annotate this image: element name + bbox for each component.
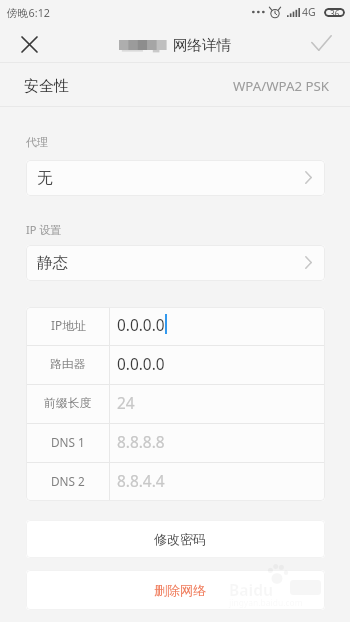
staticText: DNS 2 bbox=[51, 473, 85, 489]
staticText: IP 设置 bbox=[26, 222, 62, 237]
staticText: 代理 bbox=[26, 135, 48, 149]
button[interactable]: DNS 2 bbox=[26, 463, 325, 501]
button[interactable]: 删除网络 bbox=[26, 570, 325, 610]
staticText: 路由器 bbox=[50, 357, 86, 372]
staticText: 前缀长度 bbox=[44, 396, 92, 411]
staticText: 0.0.0.0 bbox=[117, 315, 165, 336]
staticText: 0.0.0.0 bbox=[117, 354, 165, 375]
staticText: 安全性 bbox=[24, 77, 69, 96]
button[interactable]: 保存 bbox=[304, 26, 350, 62]
staticText: 无 bbox=[37, 168, 53, 188]
button[interactable]: IP地址 bbox=[26, 307, 325, 345]
staticText: 36 bbox=[330, 8, 340, 17]
staticText: Baidu bbox=[229, 579, 274, 600]
button[interactable]: 修改密码 bbox=[26, 520, 325, 558]
staticText: 24 bbox=[117, 393, 135, 414]
button[interactable]: 无 bbox=[26, 160, 325, 196]
staticText: 修改密码 bbox=[154, 531, 206, 547]
staticText: 静态 bbox=[37, 253, 68, 273]
button[interactable]: 静态 bbox=[26, 245, 325, 281]
button[interactable]: 关闭 bbox=[0, 26, 46, 62]
button[interactable]: 前缀长度 bbox=[26, 385, 325, 423]
staticText: WPA/WPA2 PSK bbox=[233, 77, 330, 95]
staticText: 删除网络 bbox=[154, 582, 206, 598]
button[interactable]: DNS 1 bbox=[26, 424, 325, 462]
staticText: 网络详情 bbox=[173, 36, 231, 54]
staticText: 8.8.4.4 bbox=[117, 471, 165, 492]
staticText: DNS 1 bbox=[51, 434, 85, 450]
button[interactable]: 安全性 bbox=[0, 63, 350, 106]
staticText: 傍晚6:12 bbox=[7, 5, 51, 20]
button[interactable]: 路由器 bbox=[26, 346, 325, 384]
staticText: 8.8.8.8 bbox=[117, 432, 165, 453]
staticText: IP地址 bbox=[51, 317, 86, 333]
staticText: 4G bbox=[302, 5, 316, 19]
